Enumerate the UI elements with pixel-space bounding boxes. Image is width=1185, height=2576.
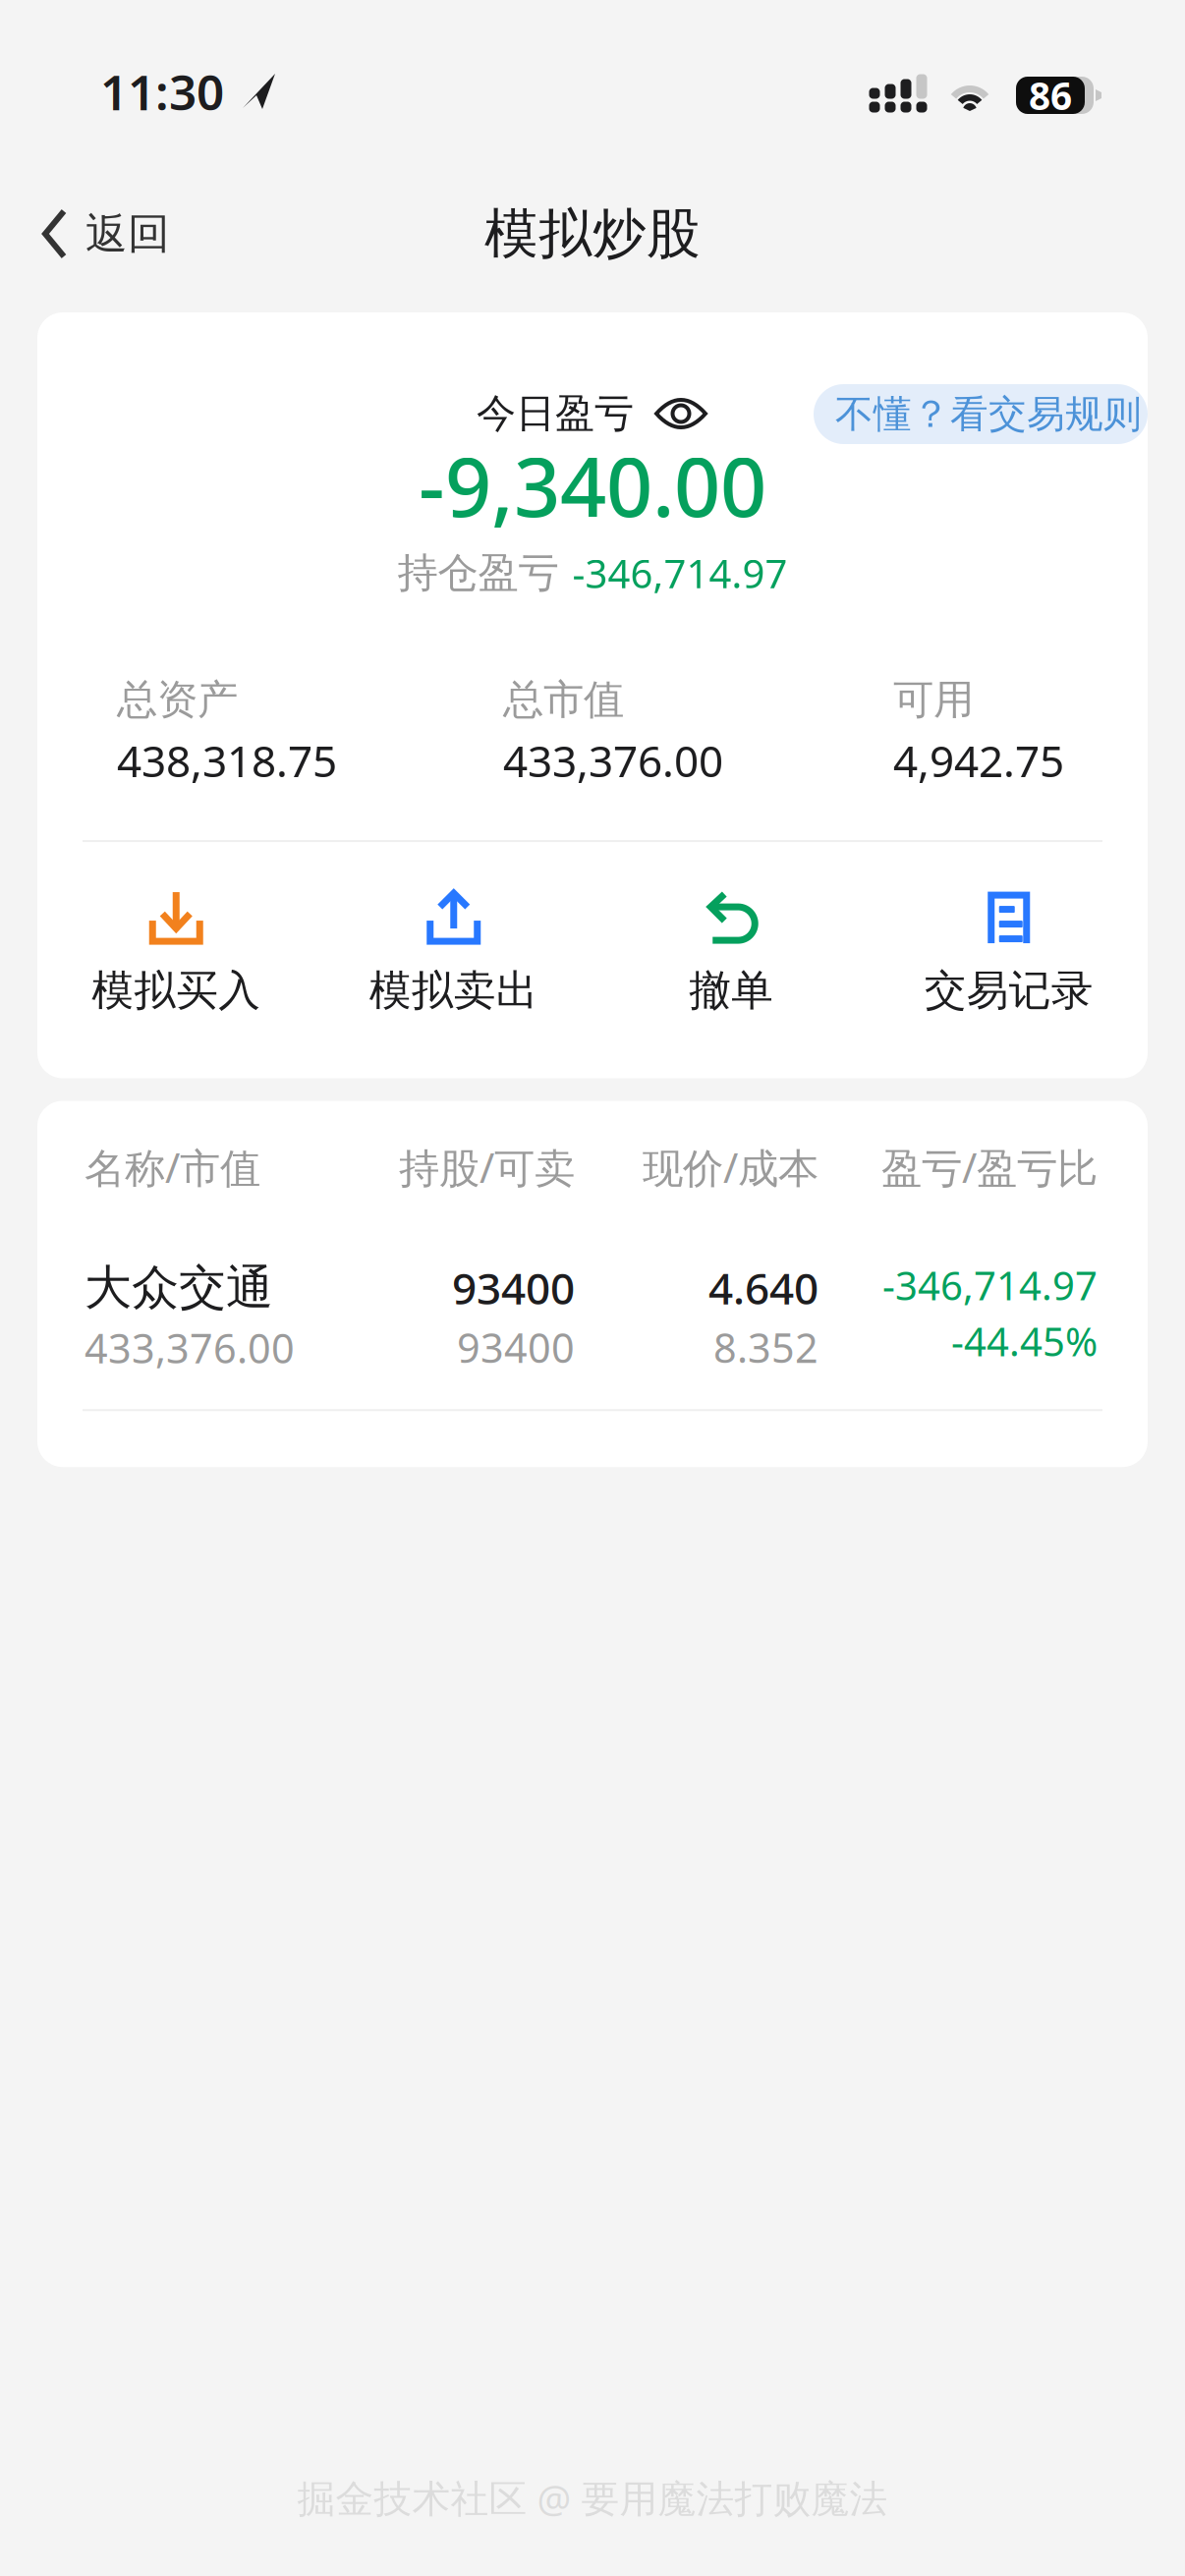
- staticText: 现价/成本: [643, 1140, 818, 1194]
- staticText: 93400: [452, 1259, 575, 1316]
- button[interactable]: 大众交通: [37, 1194, 1148, 1409]
- staticText: 模拟买入: [92, 965, 261, 1016]
- staticText: 模拟炒股: [484, 201, 701, 267]
- staticText: -346,714.97: [572, 547, 788, 599]
- staticText: 持股/可卖: [399, 1140, 575, 1194]
- staticText: -346,714.97: [882, 1259, 1098, 1311]
- staticText: 今日盈亏: [477, 389, 634, 438]
- staticText: 名称/市值: [85, 1140, 260, 1194]
- staticText: 86: [1029, 70, 1072, 120]
- button[interactable]: 模拟卖出: [315, 887, 592, 1016]
- staticText: 438,318.75: [117, 732, 337, 789]
- staticText: 模拟卖出: [369, 965, 538, 1016]
- staticText: 4,942.75: [893, 732, 1064, 789]
- staticText: 总资产: [117, 675, 238, 725]
- button[interactable]: 模拟买入: [37, 887, 315, 1016]
- staticText: 大众交通: [85, 1259, 273, 1317]
- button[interactable]: 交易记录: [870, 887, 1148, 1016]
- staticText: 4.640: [708, 1259, 818, 1316]
- staticText: 盈亏/盈亏比: [881, 1140, 1098, 1194]
- staticText: 433,376.00: [85, 1321, 295, 1375]
- staticText: 8.352: [713, 1320, 818, 1374]
- staticText: -9,340.00: [419, 431, 766, 539]
- staticText: 93400: [457, 1320, 575, 1374]
- staticText: 11:30: [100, 59, 224, 123]
- staticText: 掘金技术社区 @ 要用魔法打败魔法: [297, 2473, 888, 2523]
- staticText: 总市值: [503, 675, 624, 725]
- staticText: 433,376.00: [503, 732, 723, 789]
- staticText: -44.45%: [951, 1315, 1098, 1367]
- staticText: 持仓盈亏: [397, 548, 559, 598]
- button[interactable]: 返回: [0, 192, 192, 276]
- staticText: 返回: [85, 208, 170, 260]
- staticText: 不懂？看交易规则: [835, 391, 1142, 437]
- staticText: 可用: [893, 675, 974, 725]
- button[interactable]: 不懂？看交易规则: [814, 384, 1148, 444]
- staticText: 撤单: [689, 965, 773, 1016]
- staticText: 交易记录: [924, 965, 1093, 1016]
- button[interactable]: 撤单: [592, 887, 870, 1016]
